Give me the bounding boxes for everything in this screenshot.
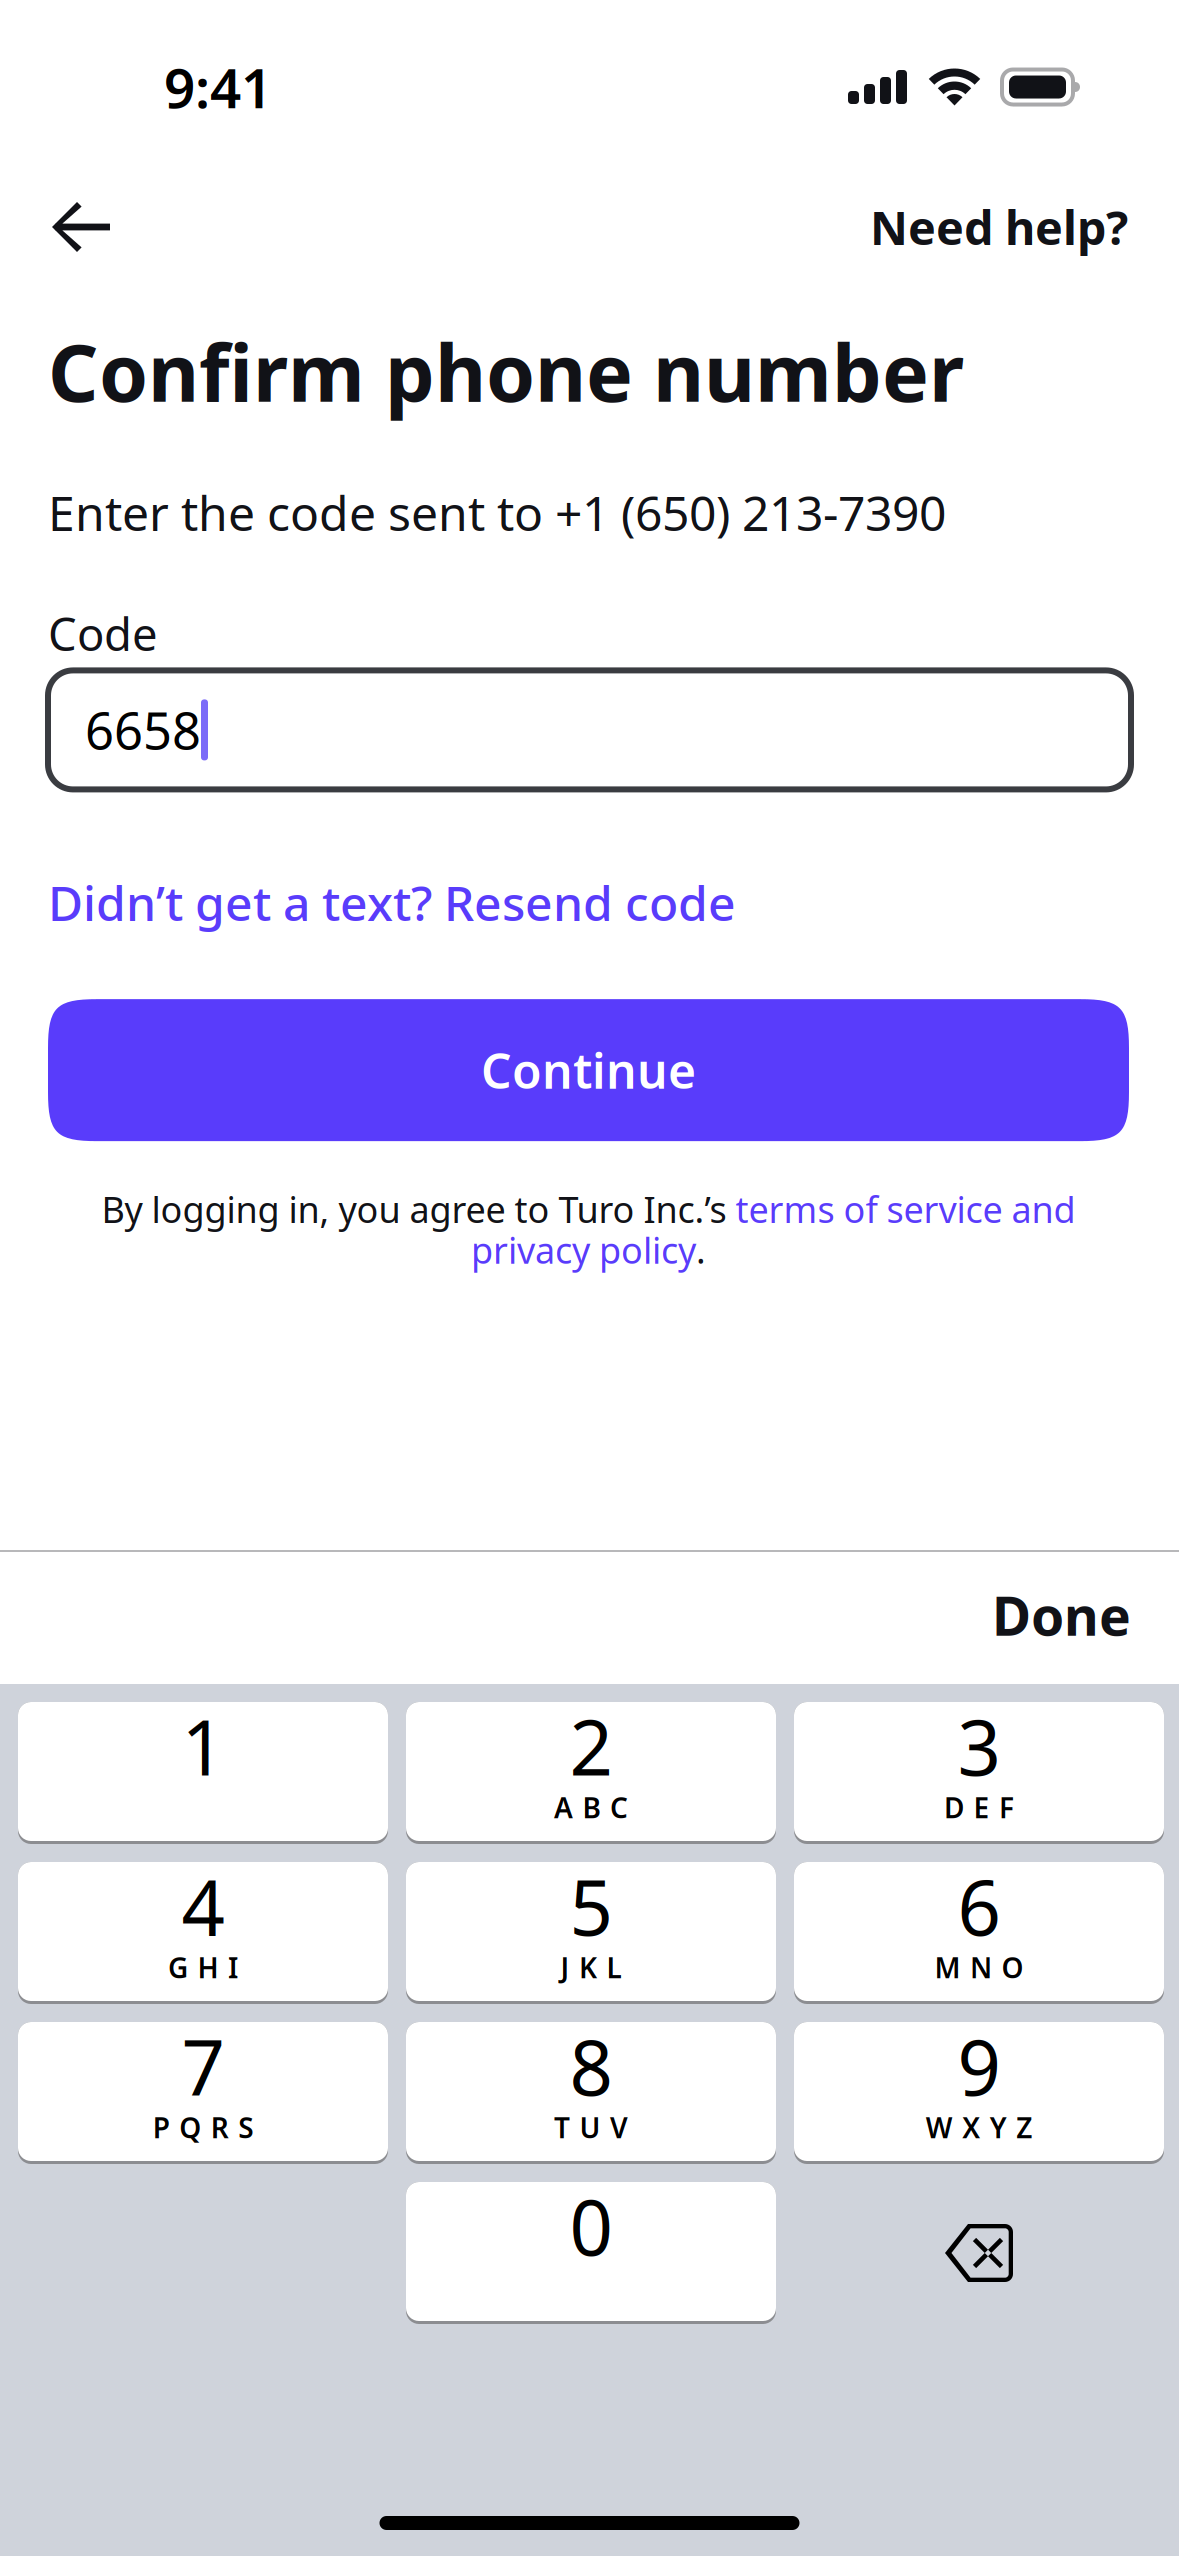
- staticText: 7: [181, 2015, 224, 2116]
- staticText: 9:41: [164, 51, 272, 123]
- button[interactable]: Delete: [794, 2182, 1164, 2324]
- button[interactable]: Need help?: [870, 179, 1179, 275]
- button[interactable]: 8: [406, 2022, 776, 2164]
- button[interactable]: Done: [992, 1552, 1179, 1684]
- staticText: Enter the code sent to +1 (650) 213-7390: [48, 480, 946, 544]
- button[interactable]: 2: [406, 1702, 776, 1844]
- button[interactable]: 6: [794, 1862, 1164, 2004]
- staticText: ABC: [554, 1789, 628, 1826]
- staticText: DEF: [944, 1789, 1014, 1826]
- button[interactable]: 4: [18, 1862, 388, 2004]
- button[interactable]: 7: [18, 2022, 388, 2164]
- staticText: terms of service and: [735, 1185, 1075, 1233]
- staticText: TUV: [554, 2109, 628, 2146]
- button[interactable]: terms of service and: [735, 1185, 1075, 1233]
- staticText: Code: [48, 603, 158, 663]
- staticText: .: [696, 1226, 706, 1274]
- staticText: GHI: [168, 1949, 238, 1986]
- staticText: 2: [569, 1695, 612, 1796]
- button[interactable]: 1: [18, 1702, 388, 1844]
- staticText: WXYZ: [926, 2109, 1032, 2146]
- staticText: 6: [957, 1855, 1000, 1956]
- staticText: 4: [181, 1855, 224, 1956]
- staticText: 9: [957, 2015, 1000, 2116]
- staticText: 3: [957, 1695, 1000, 1796]
- button[interactable]: Back: [0, 179, 211, 275]
- staticText: JKL: [560, 1949, 621, 1986]
- staticText: Continue: [481, 1038, 696, 1102]
- staticText: By logging in, you agree to Turo Inc.’s: [101, 1185, 735, 1233]
- staticText: 1: [181, 1695, 224, 1796]
- staticText: 5: [569, 1855, 612, 1956]
- button[interactable]: 3: [794, 1702, 1164, 1844]
- button[interactable]: 9: [794, 2022, 1164, 2164]
- staticText: 0: [569, 2175, 612, 2276]
- button[interactable]: 0: [406, 2182, 776, 2324]
- staticText: 8: [569, 2015, 612, 2116]
- staticText: 6658: [85, 696, 201, 764]
- staticText: privacy policy: [471, 1226, 696, 1274]
- button[interactable]: privacy policy: [471, 1226, 696, 1274]
- button[interactable]: 5: [406, 1862, 776, 2004]
- button[interactable]: Didn’t get a text? Resend code: [48, 862, 736, 942]
- staticText: PQRS: [153, 2109, 253, 2146]
- staticText: Need help?: [870, 196, 1128, 258]
- staticText: MNO: [934, 1949, 1023, 1986]
- staticText: Didn’t get a text? Resend code: [48, 870, 736, 934]
- button[interactable]: Continue: [48, 999, 1129, 1141]
- staticText: Done: [992, 1580, 1131, 1650]
- staticText: Confirm phone number: [48, 319, 964, 423]
